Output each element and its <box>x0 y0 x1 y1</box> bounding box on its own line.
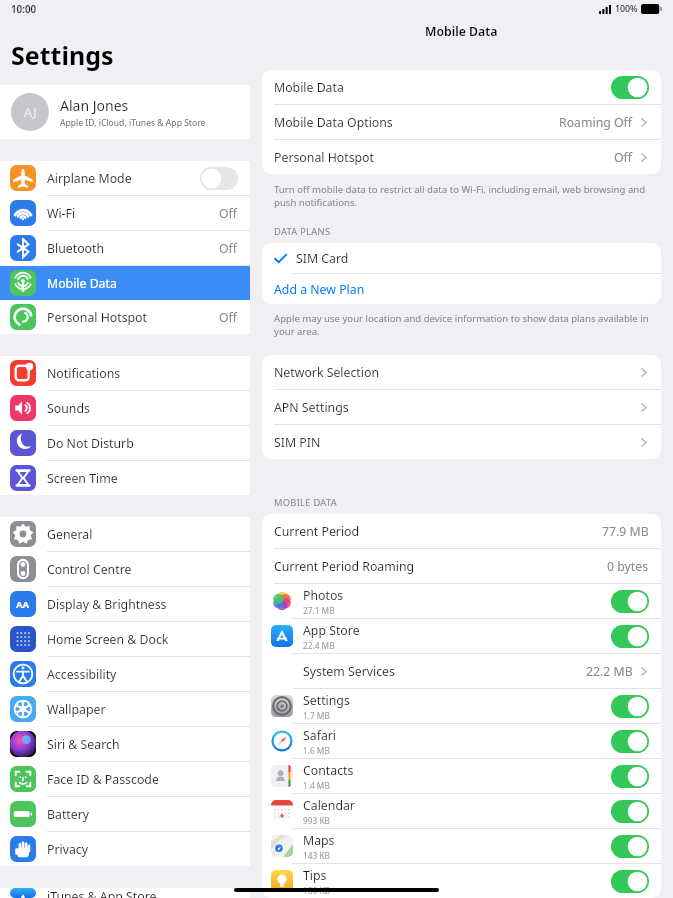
button[interactable]: App Store <box>262 619 661 653</box>
staticText: Off <box>219 240 238 257</box>
staticText: Current Period Roaming <box>274 558 415 575</box>
button[interactable]: Bluetooth <box>0 231 250 265</box>
button[interactable]: Photos <box>262 584 661 618</box>
button[interactable]: Calendar <box>262 794 661 828</box>
staticText: Settings <box>303 692 350 709</box>
staticText: 143 KB <box>303 850 330 861</box>
button[interactable]: APN Settings <box>262 390 661 424</box>
staticText: Apple may use your location and device i… <box>274 312 649 338</box>
button[interactable]: Current Period Roaming <box>262 549 661 583</box>
staticText: Siri & Search <box>47 736 238 753</box>
button[interactable]: Network Selection <box>262 355 661 389</box>
staticText: Home Screen & Dock <box>47 631 238 648</box>
button[interactable]: On <box>611 76 649 99</box>
button[interactable]: Face ID & Passcode <box>0 762 250 796</box>
staticText: Off <box>219 205 238 222</box>
button[interactable]: Add a New Plan <box>262 274 661 304</box>
staticText: Battery <box>47 806 238 823</box>
button[interactable]: Maps <box>262 829 661 863</box>
button[interactable]: SIM PIN <box>262 425 661 459</box>
staticText: General <box>47 526 238 543</box>
staticText: iTunes & App Store <box>47 888 238 898</box>
staticText: Mobile Data <box>425 23 498 40</box>
button[interactable]: Do Not Disturb <box>0 426 250 460</box>
button[interactable]: On <box>611 730 649 753</box>
button[interactable]: SIM Card <box>262 243 661 273</box>
button[interactable]: Privacy <box>0 832 250 866</box>
button[interactable]: On <box>611 695 649 718</box>
staticText: MOBILE DATA <box>274 496 337 509</box>
button[interactable]: Off <box>200 167 238 190</box>
button[interactable]: Siri & Search <box>0 727 250 761</box>
button[interactable]: System Services <box>262 654 661 688</box>
staticText: DATA PLANS <box>274 225 331 238</box>
staticText: Maps <box>303 832 335 849</box>
staticText: 130 KB <box>303 885 330 896</box>
staticText: APN Settings <box>274 399 349 416</box>
staticText: 1.6 MB <box>303 745 330 756</box>
staticText: Off <box>219 309 238 326</box>
button[interactable]: Battery <box>0 797 250 831</box>
staticText: Display & Brightness <box>47 596 238 613</box>
staticText: Wi-Fi <box>47 205 219 222</box>
staticText: Control Centre <box>47 561 238 578</box>
staticText: Apple ID, iCloud, iTunes & App Store <box>60 117 206 129</box>
staticText: Mobile Data <box>274 79 344 96</box>
staticText: Do Not Disturb <box>47 435 238 452</box>
staticText: Alan Jones <box>60 96 129 115</box>
button[interactable]: Personal Hotspot <box>0 300 250 334</box>
button[interactable]: Airplane Mode <box>0 161 250 195</box>
staticText: Network Selection <box>274 364 380 381</box>
button[interactable]: Safari <box>262 724 661 758</box>
button[interactable]: AJ <box>0 85 250 139</box>
button[interactable]: Wallpaper <box>0 692 250 726</box>
button[interactable]: On <box>611 590 649 613</box>
staticText: Screen Time <box>47 470 238 487</box>
staticText: Wallpaper <box>47 701 238 718</box>
button[interactable]: Current Period <box>262 514 661 548</box>
staticText: Privacy <box>47 841 238 858</box>
button[interactable]: Home Screen & Dock <box>0 622 250 656</box>
staticText: 0 bytes <box>607 558 649 575</box>
button[interactable]: Mobile Data Options <box>262 105 661 139</box>
button[interactable]: On <box>611 835 649 858</box>
button[interactable]: Wi-Fi <box>0 196 250 230</box>
staticText: Mobile Data <box>47 275 238 292</box>
staticText: Settings <box>11 38 114 72</box>
staticText: Airplane Mode <box>47 170 200 187</box>
staticText: 22.2 MB <box>586 663 633 680</box>
button[interactable]: Mobile Data <box>0 266 250 300</box>
button[interactable]: Contacts <box>262 759 661 793</box>
staticText: App Store <box>303 622 360 639</box>
button[interactable]: Control Centre <box>0 552 250 586</box>
staticText: Personal Hotspot <box>47 309 219 326</box>
button[interactable]: Mobile Data <box>262 70 661 104</box>
staticText: Face ID & Passcode <box>47 771 238 788</box>
button[interactable]: Tips <box>262 864 661 898</box>
button[interactable]: On <box>611 765 649 788</box>
button[interactable]: On <box>611 800 649 823</box>
button[interactable]: Accessibility <box>0 657 250 691</box>
staticText: AA <box>16 598 30 611</box>
staticText: Mobile Data Options <box>274 114 393 131</box>
staticText: Add a New Plan <box>274 281 365 298</box>
button[interactable]: On <box>611 870 649 893</box>
staticText: Turn off mobile data to restrict all dat… <box>274 183 649 209</box>
button[interactable]: Notifications <box>0 356 250 390</box>
button[interactable]: Screen Time <box>0 461 250 495</box>
staticText: Contacts <box>303 762 354 779</box>
staticText: AJ <box>24 103 37 121</box>
button[interactable]: Sounds <box>0 391 250 425</box>
button[interactable]: iTunes & App Store <box>0 888 250 898</box>
staticText: Sounds <box>47 400 238 417</box>
button[interactable]: General <box>0 517 250 551</box>
button[interactable]: Settings <box>262 689 661 723</box>
staticText: Photos <box>303 587 344 604</box>
staticText: 10:00 <box>11 3 37 16</box>
button[interactable]: Personal Hotspot <box>262 140 661 174</box>
staticText: Roaming Off <box>559 114 633 131</box>
button[interactable]: AA <box>0 587 250 621</box>
staticText: Safari <box>303 727 337 744</box>
staticText: Bluetooth <box>47 240 219 257</box>
button[interactable]: On <box>611 625 649 648</box>
